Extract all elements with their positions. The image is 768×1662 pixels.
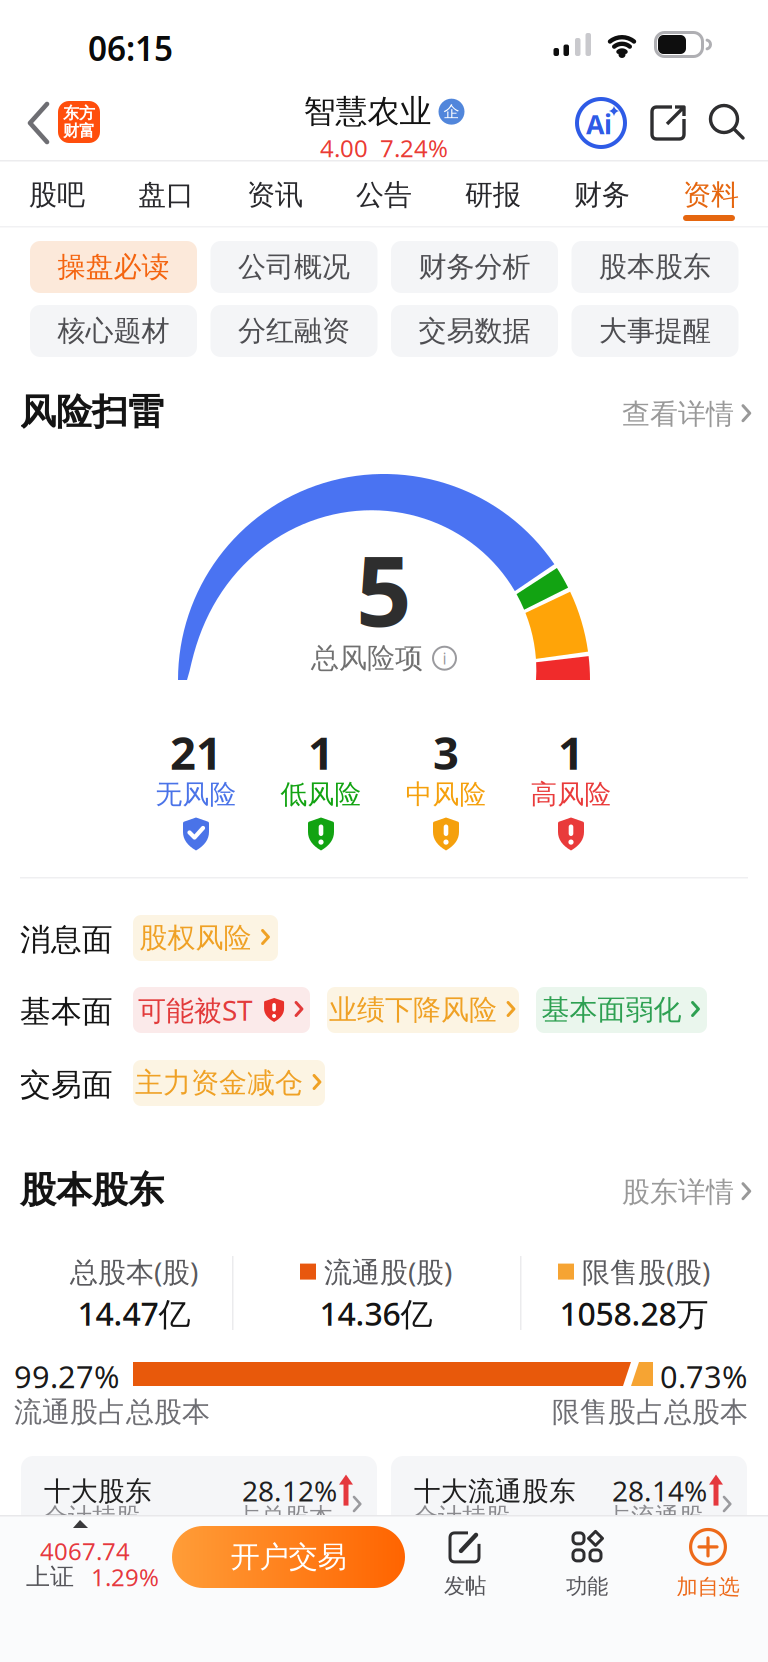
- staticText: 股东详情: [622, 1175, 734, 1209]
- staticText: 低风险: [280, 778, 361, 811]
- staticText: 大事提醒: [599, 314, 711, 348]
- button[interactable]: 分红融资: [210, 305, 377, 357]
- staticText: 1: [558, 722, 584, 782]
- button[interactable]: 发帖: [415, 1524, 515, 1604]
- button[interactable]: 研报: [448, 170, 538, 220]
- button[interactable]: 财务: [557, 170, 647, 220]
- staticText: 高风险: [530, 778, 611, 811]
- button[interactable]: 开户交易: [172, 1526, 405, 1588]
- staticText: 4067.74: [40, 1535, 130, 1567]
- staticText: 基本面弱化: [542, 993, 682, 1027]
- staticText: i: [442, 648, 446, 669]
- staticText: 财务分析: [418, 250, 530, 284]
- staticText: 十大股东: [44, 1475, 152, 1508]
- staticText: 合计持股: [414, 1502, 510, 1531]
- staticText: 21: [170, 722, 222, 782]
- button[interactable]: 主力资金减仓: [133, 1060, 325, 1106]
- button[interactable]: 分享: [648, 103, 688, 143]
- button[interactable]: 股东详情: [622, 1175, 753, 1209]
- staticText: 中风险: [405, 778, 486, 811]
- button[interactable]: 业绩下降风险: [327, 987, 519, 1033]
- staticText: 3: [433, 722, 459, 782]
- staticText: 发帖: [444, 1573, 486, 1599]
- staticText: 交易面: [20, 1066, 113, 1104]
- button[interactable]: 4067.74: [0, 1517, 165, 1601]
- staticText: 5: [356, 524, 412, 653]
- button[interactable]: 股吧: [12, 170, 102, 220]
- button[interactable]: 盘口: [121, 170, 211, 220]
- staticText: 上证: [26, 1562, 74, 1591]
- button[interactable]: 十大流通股东: [391, 1456, 747, 1556]
- staticText: 总股本(股): [70, 1253, 198, 1290]
- staticText: 99.27%: [14, 1356, 119, 1397]
- staticText: 资讯: [247, 178, 303, 212]
- button[interactable]: 交易数据: [391, 305, 558, 357]
- staticText: 资料: [683, 178, 739, 212]
- button[interactable]: 财务分析: [391, 241, 558, 293]
- staticText: 无风险: [155, 778, 236, 811]
- button[interactable]: AI 助手: [575, 97, 627, 149]
- staticText: 股吧: [29, 178, 85, 212]
- button[interactable]: 核心题材: [30, 305, 197, 357]
- button[interactable]: 股权风险: [133, 915, 278, 961]
- staticText: Ai: [586, 106, 612, 142]
- button[interactable]: 加自选: [643, 1524, 768, 1604]
- staticText: 主力资金减仓: [135, 1066, 303, 1100]
- staticText: 风险扫雷: [20, 390, 164, 434]
- staticText: 合计持股: [44, 1502, 140, 1531]
- staticText: 0.73%: [660, 1356, 747, 1397]
- button[interactable]: 资料: [666, 170, 756, 220]
- staticText: 研报: [465, 178, 521, 212]
- staticText: 06:15: [88, 26, 173, 70]
- button[interactable]: 资讯: [230, 170, 320, 220]
- button[interactable]: 公告: [339, 170, 429, 220]
- staticText: 总风险项: [311, 641, 423, 675]
- staticText: 加自选: [676, 1574, 739, 1600]
- button[interactable]: 股本股东: [571, 241, 738, 293]
- button[interactable]: 功能: [537, 1524, 637, 1604]
- staticText: 股本股东: [599, 250, 711, 284]
- staticText: 股权风险: [140, 921, 252, 955]
- staticText: 消息面: [20, 921, 113, 959]
- staticText: 28.14%: [612, 1472, 707, 1509]
- staticText: 功能: [566, 1573, 608, 1600]
- staticText: 股本股东: [20, 1168, 164, 1212]
- staticText: 财务: [574, 178, 630, 212]
- button[interactable]: 十大股东: [21, 1456, 377, 1556]
- staticText: 占总股本: [237, 1502, 333, 1531]
- staticText: 1: [308, 722, 334, 782]
- button[interactable]: 东方财富: [58, 101, 100, 143]
- staticText: 财富: [63, 121, 95, 141]
- staticText: 14.36亿: [319, 1292, 432, 1334]
- staticText: 流通股占总股本: [14, 1395, 210, 1429]
- staticText: 盘口: [138, 178, 194, 212]
- staticText: 公司概况: [238, 250, 350, 284]
- button[interactable]: 基本面弱化: [536, 987, 707, 1033]
- staticText: 公告: [356, 178, 412, 212]
- staticText: 限售股(股): [582, 1253, 710, 1290]
- button[interactable]: 操盘必读: [30, 241, 197, 293]
- staticText: 基本面: [20, 993, 113, 1031]
- staticText: 查看详情: [622, 397, 734, 431]
- staticText: 28.12%: [242, 1472, 337, 1509]
- staticText: 14.47亿: [77, 1292, 190, 1334]
- button[interactable]: 搜索: [707, 102, 747, 142]
- button[interactable]: 可能被ST: [133, 987, 310, 1033]
- button[interactable]: 查看详情: [622, 397, 753, 431]
- staticText: 占流通股: [607, 1502, 703, 1531]
- button[interactable]: 公司概况: [210, 241, 377, 293]
- staticText: 交易数据: [418, 314, 530, 348]
- staticText: 分红融资: [238, 314, 350, 348]
- staticText: 智慧农业: [303, 92, 431, 131]
- staticText: 操盘必读: [57, 250, 169, 284]
- staticText: 十大流通股东: [414, 1475, 576, 1508]
- staticText: 东方: [63, 103, 95, 123]
- button[interactable]: 大事提醒: [571, 305, 738, 357]
- staticText: 限售股占总股本: [552, 1395, 748, 1429]
- staticText: 业绩下降风险: [329, 993, 497, 1027]
- button[interactable]: Back: [26, 100, 54, 146]
- staticText: 核心题材: [57, 314, 169, 348]
- staticText: 可能被ST: [138, 991, 253, 1029]
- staticText: 企: [443, 102, 459, 121]
- staticText: 流通股(股): [324, 1253, 452, 1290]
